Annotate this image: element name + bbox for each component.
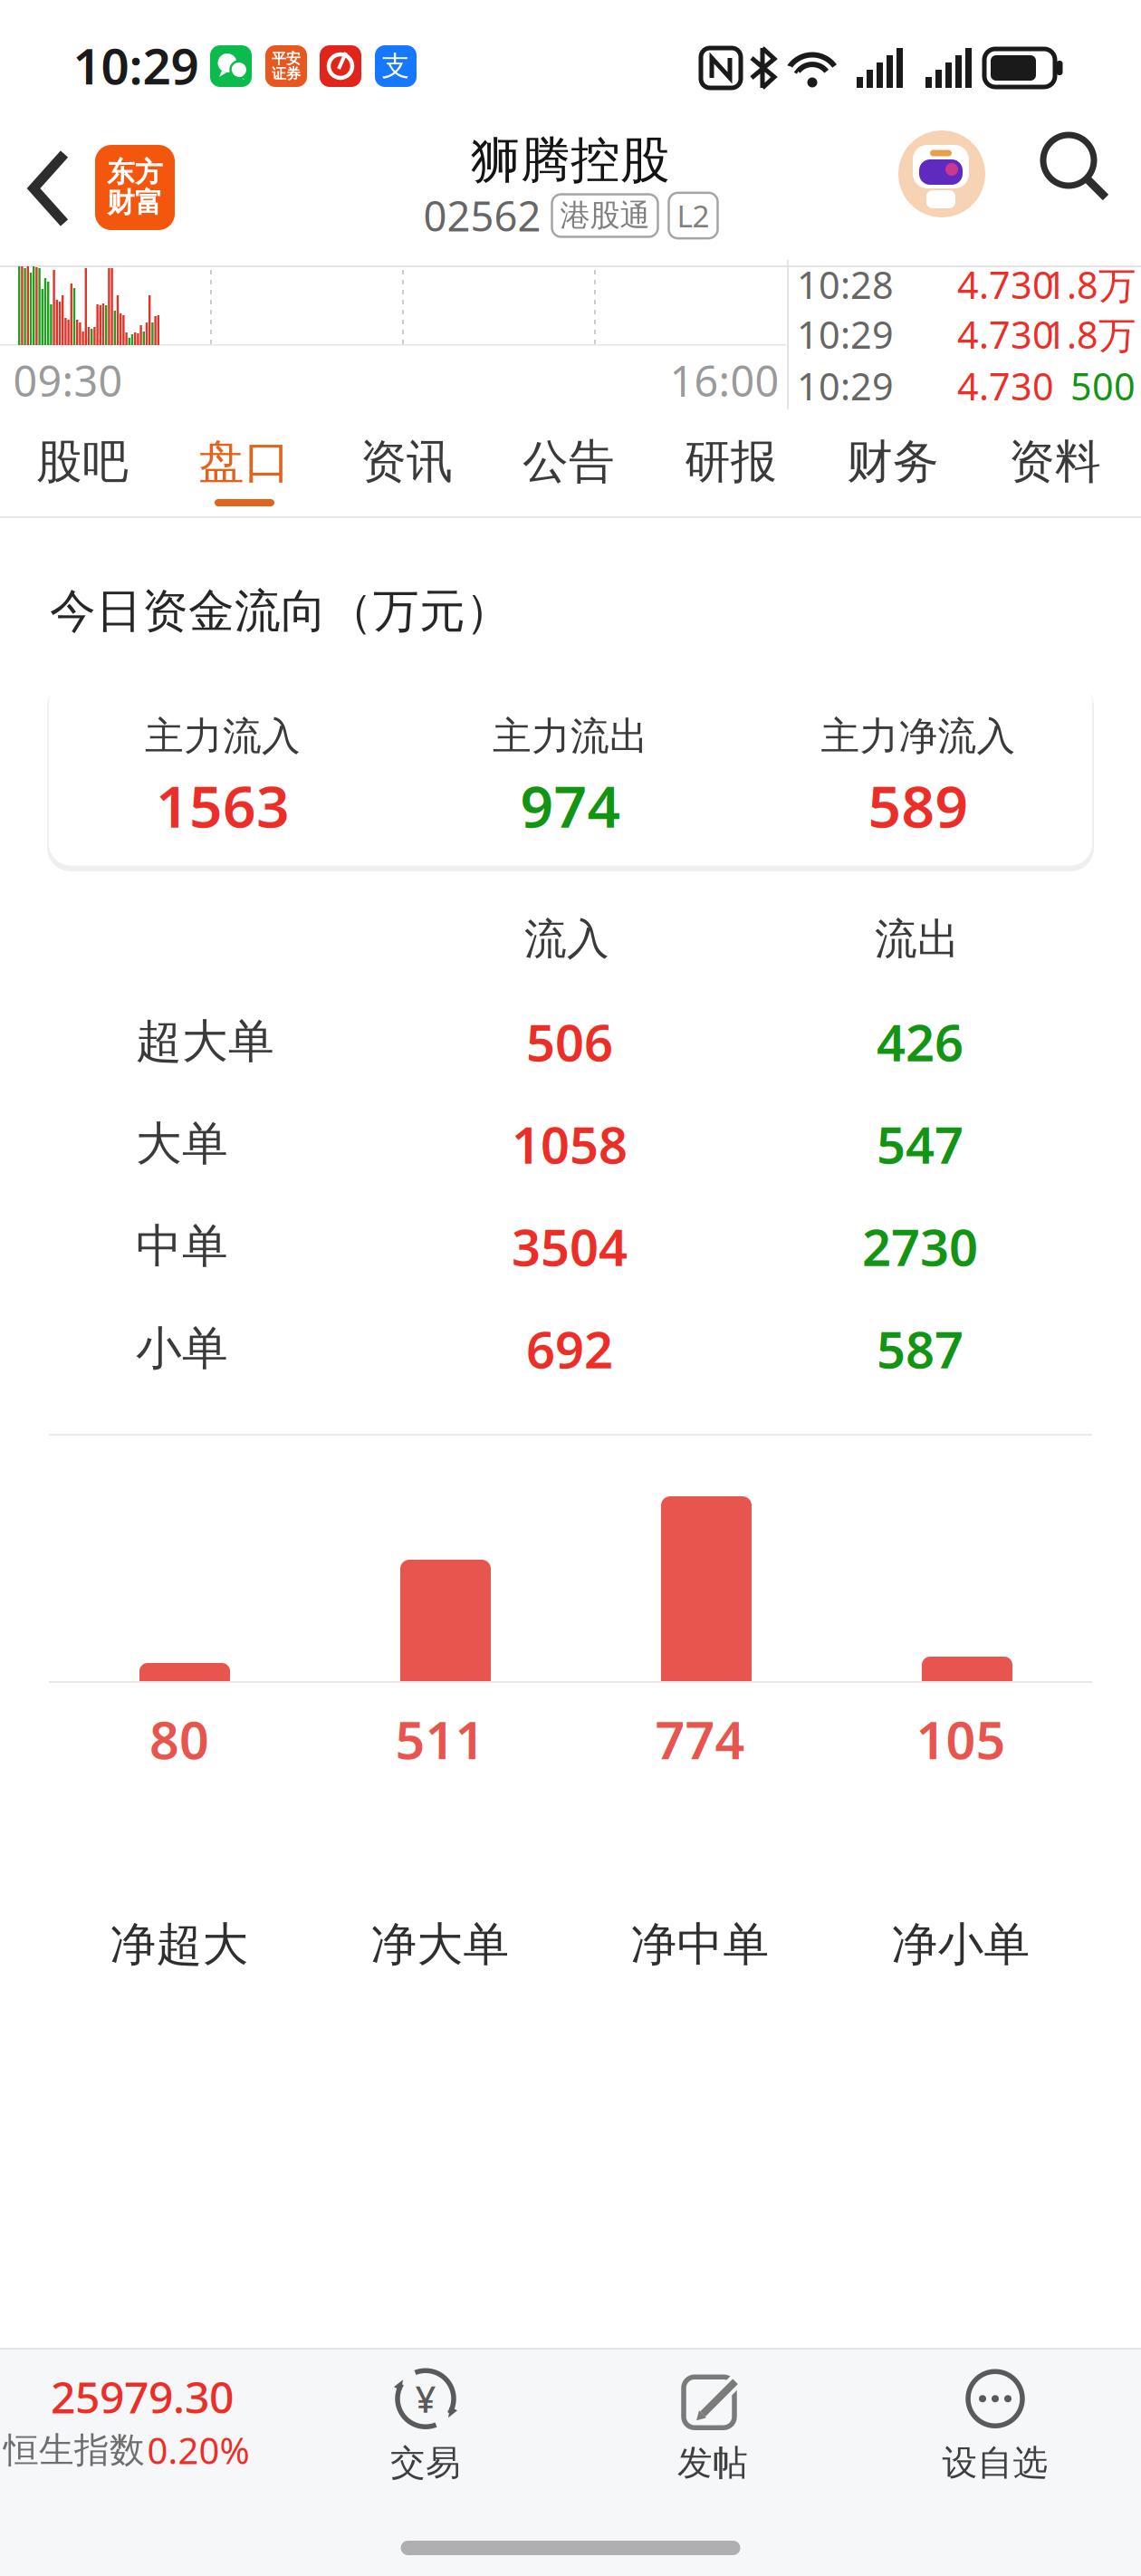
staticText: 财务 [847,434,939,490]
staticText: 发帖 [677,2441,748,2484]
staticText: 692 [526,1315,613,1382]
staticText: 1.8万 [1045,260,1136,309]
staticText: 25979.30 [51,2368,234,2425]
staticText: 研报 [685,434,777,490]
button[interactable] [1041,133,1110,202]
staticText: 4.730 [957,260,1054,309]
staticText: 4.730 [957,361,1054,411]
staticText: 426 [877,1008,964,1075]
staticText: 主力净流入 [821,713,1016,760]
staticText: 财富 [107,186,163,220]
staticText: 东方 [107,155,163,189]
staticText: 0.20% [147,2426,249,2474]
staticText: 资讯 [360,434,453,490]
staticText: 公告 [523,434,615,490]
staticText: 港股通 [560,197,650,234]
staticText: 恒生指数 [4,2429,145,2472]
button[interactable]: 设自选 [942,2367,1048,2484]
button[interactable]: 财务 [820,421,965,503]
staticText: 1563 [156,767,290,844]
staticText: 506 [526,1008,613,1075]
staticText: 狮腾控股 [471,130,670,191]
staticText: 设自选 [942,2441,1048,2484]
staticText: 主力流出 [493,713,648,760]
staticText: 2730 [862,1213,978,1280]
staticText: 589 [868,767,968,844]
button[interactable]: 资讯 [334,421,479,503]
staticText: 02562 [423,188,541,243]
staticText: 平安 [272,50,301,67]
staticText: 资料 [1009,434,1101,490]
button[interactable]: 25979.30 [0,2348,290,2493]
staticText: ¥ [415,2375,436,2423]
button[interactable] [898,130,985,217]
staticText: 09:30 [13,352,123,409]
staticText: 774 [655,1705,745,1773]
staticText: 证券 [272,65,301,83]
staticText: 10:29 [73,32,199,98]
staticText: 1058 [512,1110,628,1178]
button[interactable]: 东方 [95,145,175,230]
button[interactable]: 盘口 [172,421,317,503]
staticText: 1.8万 [1045,309,1136,359]
staticText: 105 [916,1705,1006,1773]
staticText: 净大单 [371,1917,509,1973]
staticText: 净中单 [631,1917,769,1973]
staticText: 974 [520,767,621,844]
staticText: L2 [677,196,710,236]
staticText: 中单 [136,1218,228,1275]
staticText: 16:00 [670,352,779,409]
button[interactable]: 股吧 [10,421,155,503]
button[interactable]: 公告 [496,421,641,503]
button[interactable]: 发帖 [677,2367,748,2484]
staticText: 500 [1070,361,1136,411]
staticText: 547 [877,1110,964,1178]
staticText: 3504 [512,1213,628,1280]
staticText: 4.730 [957,309,1054,359]
staticText: 大单 [136,1116,228,1172]
staticText: 10:29 [797,309,894,359]
staticText: 净小单 [892,1917,1030,1973]
staticText: 超大单 [136,1013,274,1070]
staticText: 流出 [875,913,960,965]
staticText: 支 [382,49,410,83]
staticText: 盘口 [198,434,291,490]
staticText: 511 [395,1705,485,1773]
staticText: 小单 [136,1321,228,1377]
staticText: 10:29 [797,361,894,411]
staticText: 净超大 [110,1917,249,1973]
staticText: 80 [149,1705,209,1773]
staticText: 10:28 [797,260,894,309]
staticText: 股吧 [36,434,129,490]
staticText: 主力流入 [145,713,301,760]
staticText: 今日资金流向（万元） [50,583,512,640]
staticText: 流入 [524,913,609,965]
staticText: 交易 [390,2441,461,2484]
button[interactable]: 研报 [658,421,803,503]
button[interactable]: ¥ [390,2367,461,2484]
staticText: 587 [877,1315,964,1382]
button[interactable] [23,149,77,228]
button[interactable]: 资料 [983,421,1127,503]
